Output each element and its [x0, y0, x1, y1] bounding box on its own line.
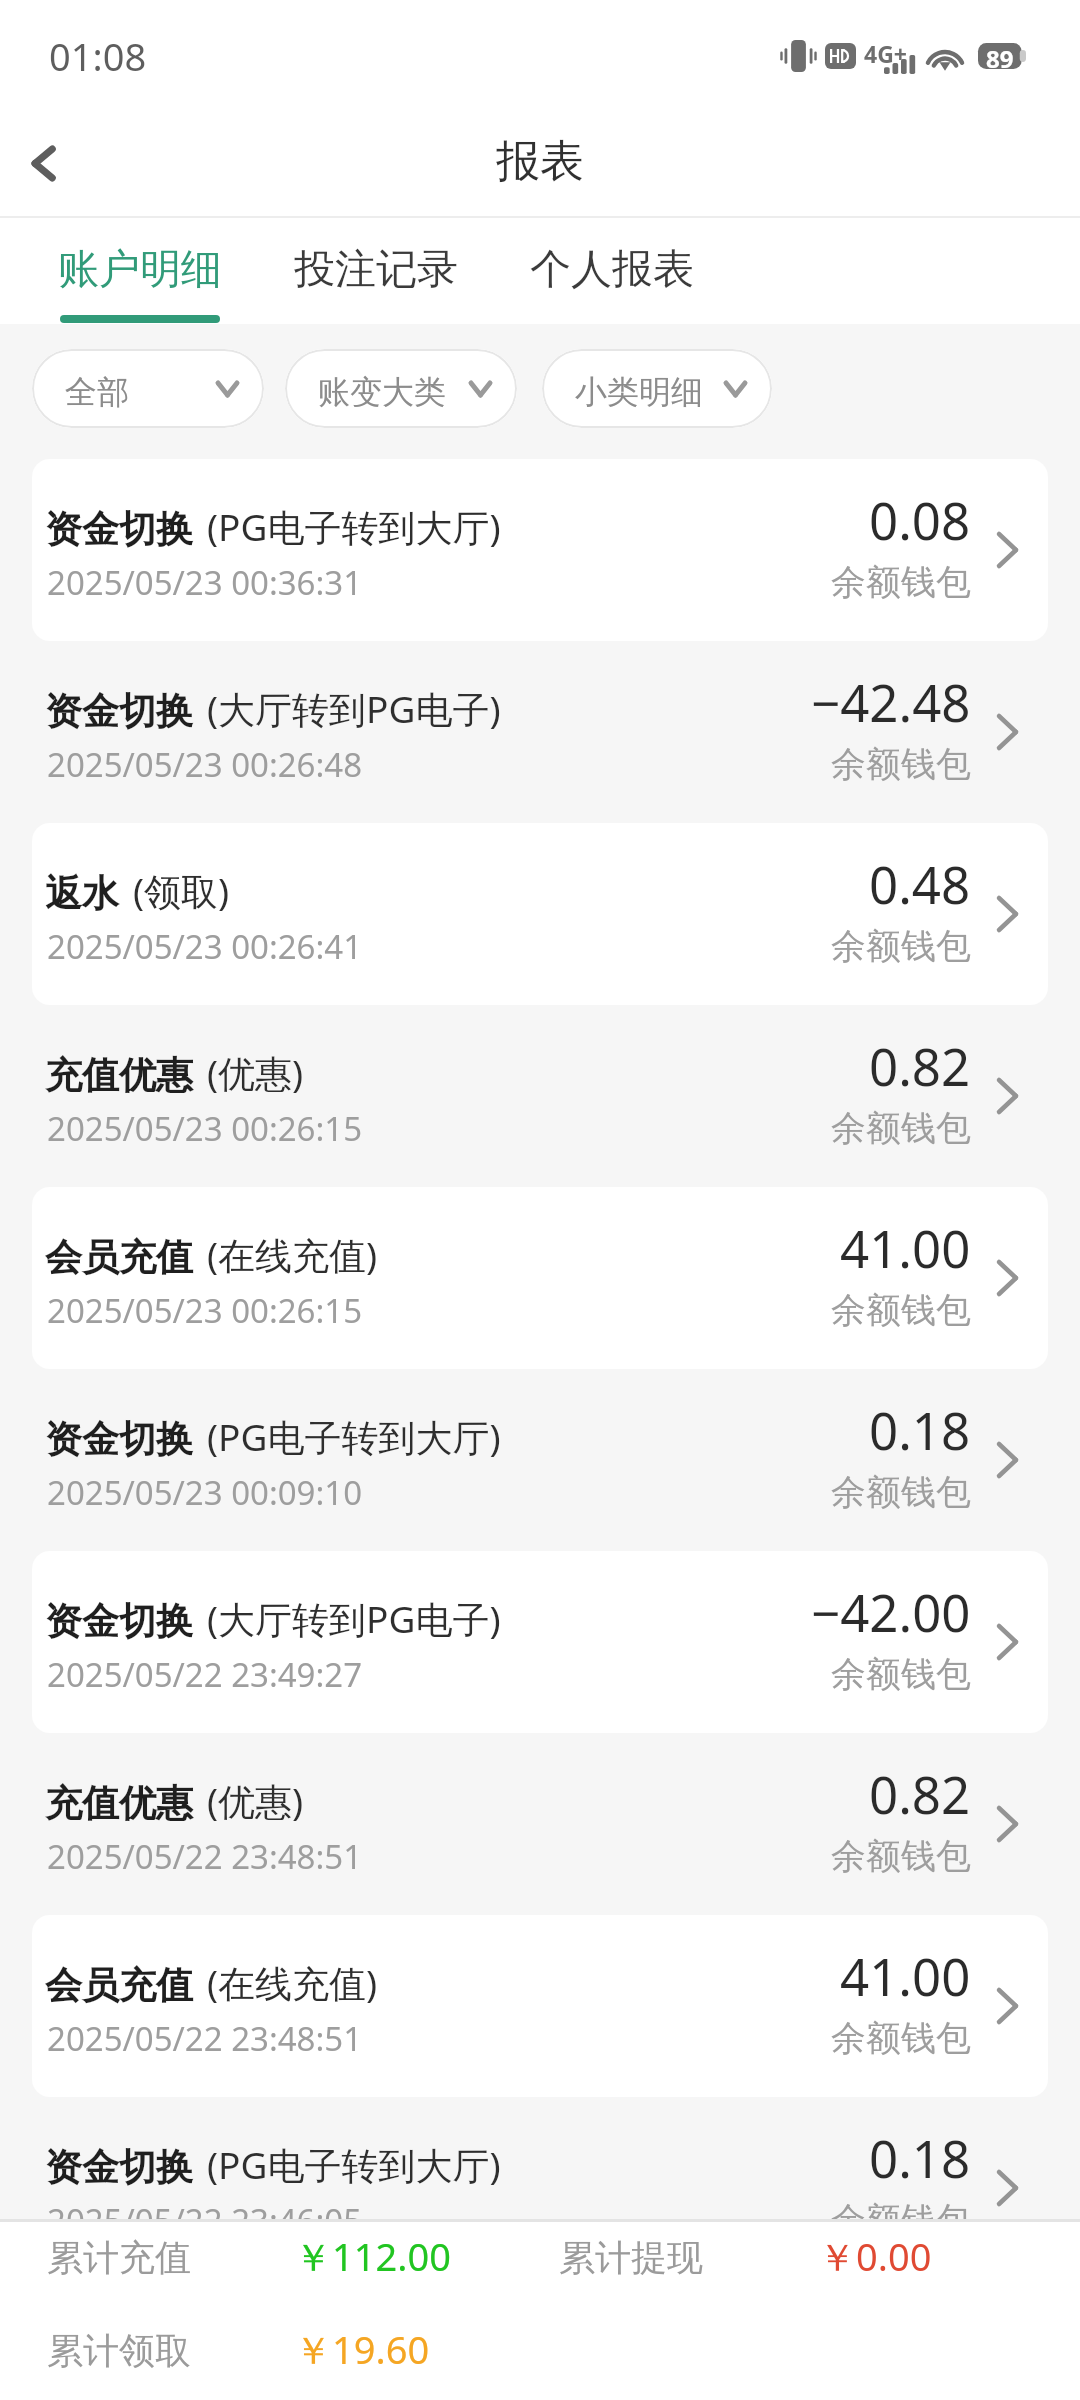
staticText: 累计提现	[559, 2235, 703, 2280]
staticText: 2025/05/22 23:48:51	[47, 2016, 363, 2061]
button[interactable]: 投注记录	[278, 218, 474, 324]
staticText: −42.00	[811, 1577, 971, 1646]
staticText: 01:08	[49, 30, 147, 82]
staticText: 0.48	[869, 849, 971, 918]
staticText: 0.18	[869, 1395, 971, 1464]
button[interactable]: 全部	[32, 349, 264, 428]
staticText: (在线充值)	[207, 1229, 378, 1280]
staticText: 小类明细	[575, 372, 703, 412]
staticText: 余额钱包	[831, 1106, 971, 1150]
staticText: 资金切换	[45, 1416, 193, 1463]
button[interactable]: 充值优惠	[32, 1733, 1048, 1915]
staticText: ￥0.00	[818, 2230, 932, 2282]
staticText: 余额钱包	[831, 742, 971, 786]
staticText: 充值优惠	[45, 1052, 193, 1099]
button[interactable]: 会员充值	[32, 1187, 1048, 1369]
staticText: 余额钱包	[831, 1834, 971, 1878]
staticText: 资金切换	[45, 1598, 193, 1645]
staticText: 返水	[45, 870, 119, 917]
button[interactable]: 资金切换	[32, 459, 1048, 641]
button[interactable]: 资金切换	[32, 2097, 1048, 2279]
staticText: (领取)	[133, 865, 230, 916]
staticText: 2025/05/23 00:26:41	[47, 924, 363, 969]
staticText: 0.82	[869, 1759, 971, 1828]
staticText: 41.00	[840, 1941, 971, 2010]
button[interactable]: Back	[0, 108, 86, 218]
staticText: 会员充值	[45, 1962, 193, 2009]
staticText: (在线充值)	[207, 1957, 378, 2008]
staticText: 累计充值	[47, 2235, 191, 2280]
staticText: 余额钱包	[831, 1652, 971, 1696]
button[interactable]: 会员充值	[32, 1915, 1048, 2097]
staticText: 89	[986, 42, 1014, 68]
staticText: 4G+	[864, 38, 907, 69]
staticText: 全部	[65, 372, 129, 412]
staticText: 2025/05/23 00:26:15	[47, 1106, 363, 1151]
staticText: 资金切换	[45, 688, 193, 735]
button[interactable]: 小类明细	[542, 349, 772, 428]
staticText: 账户明细	[58, 244, 222, 296]
staticText: ￥112.00	[294, 2230, 451, 2282]
staticText: 0.18	[869, 2123, 971, 2192]
staticText: 账变大类	[318, 372, 446, 412]
staticText: 2025/05/23 00:26:48	[47, 742, 363, 787]
staticText: (优惠)	[207, 1775, 304, 1826]
staticText: 余额钱包	[831, 2016, 971, 2060]
staticText: 2025/05/23 00:36:31	[47, 560, 363, 605]
staticText: 2025/05/22 23:46:05	[47, 2198, 363, 2243]
staticText: 2025/05/23 00:26:15	[47, 1288, 363, 1333]
staticText: (优惠)	[207, 1047, 304, 1098]
button[interactable]: 资金切换	[32, 1551, 1048, 1733]
button[interactable]: 账户明细	[42, 218, 238, 324]
staticText: 41.00	[840, 1213, 971, 1282]
button[interactable]: 资金切换	[32, 641, 1048, 823]
staticText: 0.82	[869, 1031, 971, 1100]
staticText: (PG电子转到大厅)	[207, 501, 501, 552]
staticText: 余额钱包	[831, 560, 971, 604]
staticText: (大厅转到PG电子)	[207, 683, 501, 734]
staticText: 资金切换	[45, 506, 193, 553]
staticText: 0.08	[869, 485, 971, 554]
staticText: 余额钱包	[831, 1470, 971, 1514]
button[interactable]: 返水	[32, 823, 1048, 1005]
staticText: (大厅转到PG电子)	[207, 1593, 501, 1644]
staticText: 余额钱包	[831, 1288, 971, 1332]
staticText: 2025/05/22 23:48:51	[47, 1834, 363, 1879]
staticText: 余额钱包	[831, 924, 971, 968]
staticText: 个人报表	[530, 244, 694, 296]
staticText: 充值优惠	[45, 1780, 193, 1827]
staticText: ￥19.60	[294, 2323, 430, 2375]
button[interactable]: 资金切换	[32, 1369, 1048, 1551]
staticText: 余额钱包	[831, 2198, 971, 2242]
staticText: 2025/05/23 00:09:10	[47, 1470, 363, 1515]
button[interactable]: 账变大类	[285, 349, 517, 428]
button[interactable]: 个人报表	[514, 218, 710, 324]
staticText: 会员充值	[45, 1234, 193, 1281]
staticText: 2025/05/22 23:49:27	[47, 1652, 363, 1697]
staticText: 投注记录	[294, 244, 458, 296]
button[interactable]: 充值优惠	[32, 1005, 1048, 1187]
staticText: (PG电子转到大厅)	[207, 1411, 501, 1462]
staticText: 报表	[496, 134, 584, 189]
staticText: −42.48	[811, 667, 971, 736]
staticText: 累计领取	[47, 2328, 191, 2373]
staticText: (PG电子转到大厅)	[207, 2139, 501, 2190]
staticText: 资金切换	[45, 2144, 193, 2191]
